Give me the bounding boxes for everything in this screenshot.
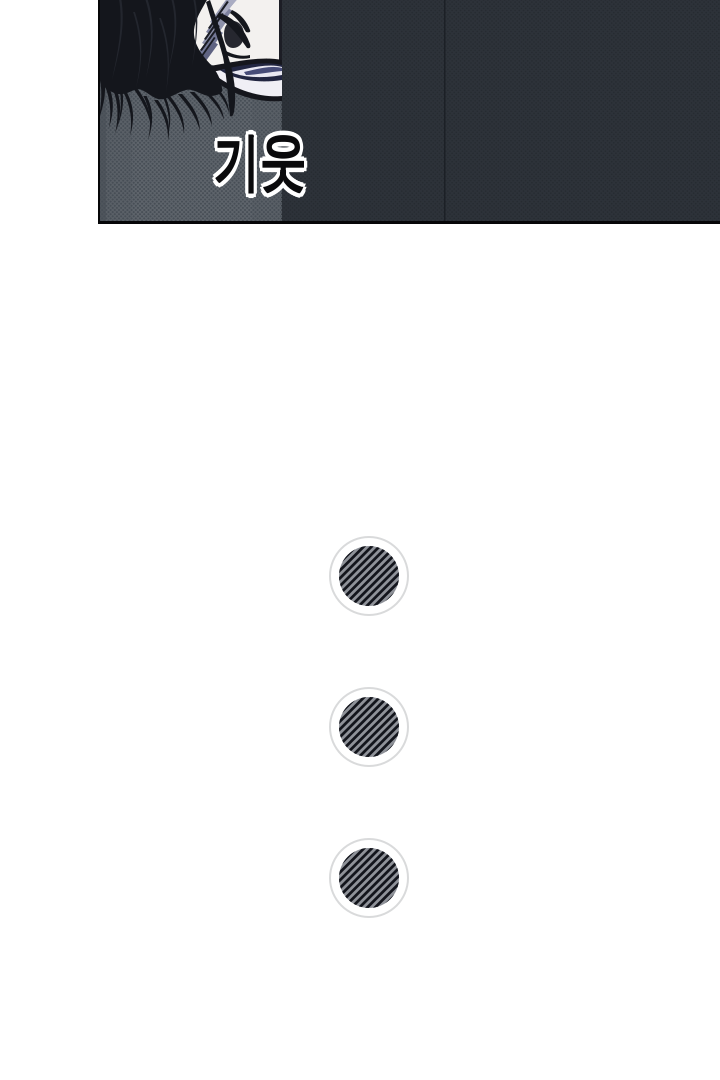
staticText: 기웃 (214, 134, 310, 193)
staticText: 기웃 (213, 131, 309, 190)
staticText: 기웃 (211, 131, 307, 190)
staticText: 기웃 (208, 136, 304, 195)
staticText: 기웃 (213, 136, 309, 195)
staticText: 기웃 (208, 131, 304, 190)
staticText: 기웃 (208, 134, 304, 193)
staticText: 기웃 (211, 134, 307, 193)
staticText: 기웃 (211, 137, 307, 196)
